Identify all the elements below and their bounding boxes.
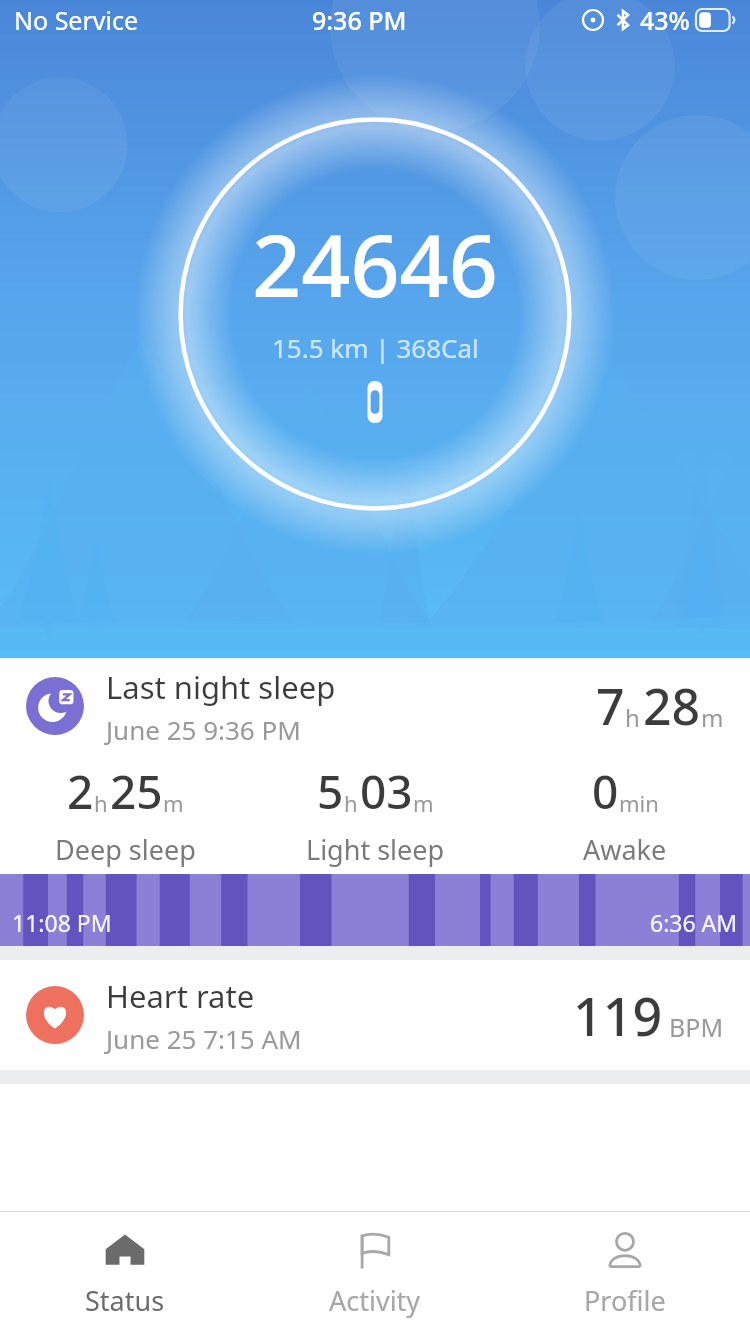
staticText: Heart rate: [106, 975, 255, 1017]
button[interactable]: Status: [0, 1212, 250, 1334]
button[interactable]: Profile: [500, 1212, 750, 1334]
button[interactable]: 11:08 PM: [0, 874, 750, 946]
staticText: 119: [573, 980, 663, 1051]
staticText: h: [94, 788, 108, 818]
staticText: Status: [85, 1282, 165, 1319]
staticText: m: [163, 788, 184, 818]
button[interactable]: Heart rate: [0, 960, 750, 1070]
staticText: m: [701, 701, 724, 734]
staticText: June 25 7:15 AM: [106, 1021, 302, 1056]
staticText: BPM: [669, 1010, 724, 1044]
staticText: m: [413, 788, 434, 818]
staticText: Light sleep: [306, 831, 445, 868]
staticText: 28: [643, 672, 701, 740]
staticText: 2: [67, 760, 94, 823]
staticText: h: [344, 788, 358, 818]
button[interactable]: Last night sleep: [0, 658, 750, 874]
staticText: 9:36 PM: [312, 3, 407, 37]
staticText: 24646: [252, 205, 498, 322]
staticText: Deep sleep: [55, 831, 196, 868]
staticText: 25: [110, 760, 163, 823]
staticText: 15.5 km | 368Cal: [272, 330, 479, 365]
staticText: 11:08 PM: [12, 907, 112, 938]
staticText: June 25 9:36 PM: [106, 712, 301, 747]
button[interactable]: Activity: [250, 1212, 500, 1334]
staticText: h: [625, 701, 640, 734]
staticText: min: [619, 788, 659, 818]
staticText: 43%: [640, 3, 690, 37]
staticText: 03: [360, 760, 413, 823]
staticText: Awake: [583, 831, 667, 868]
staticText: No Service: [14, 3, 139, 37]
staticText: 6:36 AM: [650, 907, 738, 938]
staticText: 0: [592, 760, 619, 823]
staticText: 7: [596, 672, 625, 740]
staticText: 5: [317, 760, 344, 823]
staticText: Profile: [584, 1282, 666, 1319]
staticText: Last night sleep: [106, 666, 336, 708]
staticText: Activity: [329, 1282, 421, 1319]
